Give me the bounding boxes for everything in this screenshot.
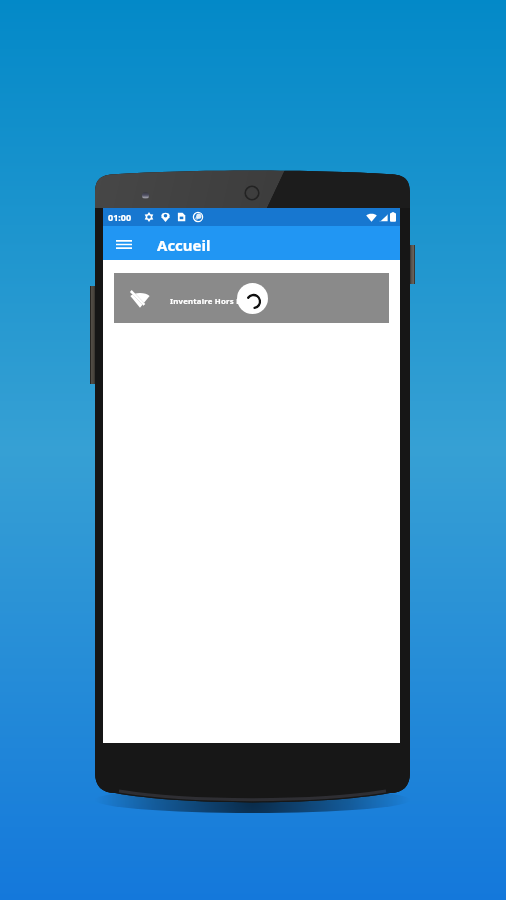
button[interactable]: Open navigation drawer (112, 232, 136, 256)
button[interactable]: Inventaire Hors ligne (114, 273, 389, 323)
button[interactable]: Refresh inventory (237, 283, 268, 314)
staticText: 01:00 (108, 211, 132, 223)
staticText: Inventaire Hors ligne (170, 296, 257, 307)
staticText: Accueil (157, 235, 211, 255)
